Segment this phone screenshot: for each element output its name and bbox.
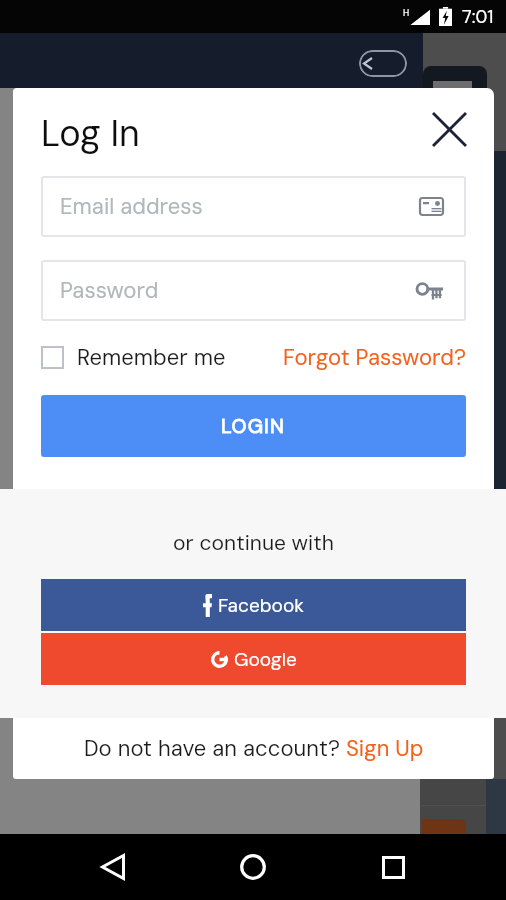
staticText: Do not have an account? Sign Up (84, 734, 424, 763)
staticText: or continue with (173, 529, 334, 556)
button[interactable]: Remember me (41, 343, 226, 372)
button[interactable]: Do not have an account? Sign Up (84, 734, 424, 763)
staticText: Log In (41, 110, 140, 157)
button[interactable]: Email address (41, 176, 466, 237)
button[interactable]: Facebook (41, 579, 466, 631)
staticText: Password (60, 276, 159, 305)
staticText: Google (234, 647, 297, 672)
button[interactable]: Close (423, 103, 475, 155)
button[interactable]: Google (41, 633, 466, 685)
button[interactable]: Password (41, 260, 466, 321)
button[interactable]: Forgot Password? (283, 343, 466, 372)
staticText: Forgot Password? (283, 343, 466, 372)
button[interactable]: Home (226, 840, 280, 894)
staticText: Remember me (77, 343, 226, 372)
staticText: Facebook (218, 593, 304, 618)
staticText: 7:01 (462, 5, 494, 28)
staticText: LOGIN (221, 413, 286, 439)
button[interactable]: Recents (366, 840, 420, 894)
staticText: H (403, 7, 410, 19)
button[interactable]: Back (359, 50, 407, 77)
button[interactable]: LOGIN (41, 395, 466, 457)
button[interactable]: Back (86, 840, 140, 894)
staticText: Email address (60, 192, 203, 221)
